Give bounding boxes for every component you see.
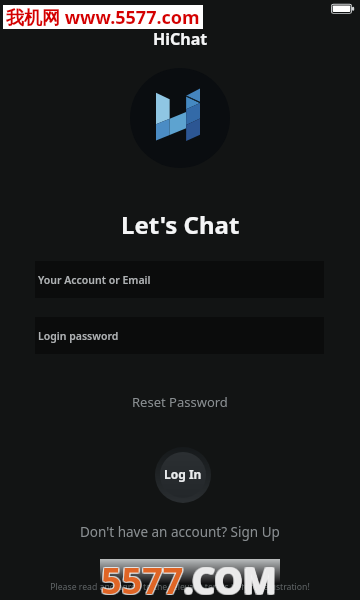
staticText: Let's Chat <box>121 208 240 241</box>
staticText: .COM <box>184 556 278 600</box>
staticText: Your Account or Email <box>38 273 151 287</box>
staticText: 5577.COM <box>101 555 277 600</box>
staticText: HiChat <box>153 28 208 50</box>
staticText: Log In <box>164 466 202 482</box>
button[interactable]: Your Account or Email <box>35 261 324 298</box>
staticText: Login password <box>38 329 119 343</box>
staticText: Don't have an account? Sign Up <box>80 523 280 541</box>
staticText: 5577.COM <box>100 557 276 600</box>
button[interactable]: Login password <box>35 317 324 354</box>
button[interactable]: Don't have an account? Sign Up <box>68 519 292 545</box>
staticText: Please read and agree to the relevant te… <box>50 581 310 593</box>
staticText: 5577.COM <box>100 556 276 600</box>
button[interactable]: Log In <box>160 452 206 498</box>
staticText: 5577.COM <box>102 555 278 600</box>
staticText: 5577.COM <box>102 557 278 600</box>
other: Battery full <box>330 3 356 15</box>
staticText: 5577 <box>101 556 184 600</box>
staticText: 5577.COM <box>102 556 278 600</box>
staticText: Reset Password <box>132 393 228 411</box>
staticText: 5577.COM <box>100 555 276 600</box>
staticText: 我机网 www.5577.com <box>6 5 200 29</box>
button[interactable]: Reset Password <box>120 389 240 415</box>
staticText: 5577.COM <box>101 557 277 600</box>
